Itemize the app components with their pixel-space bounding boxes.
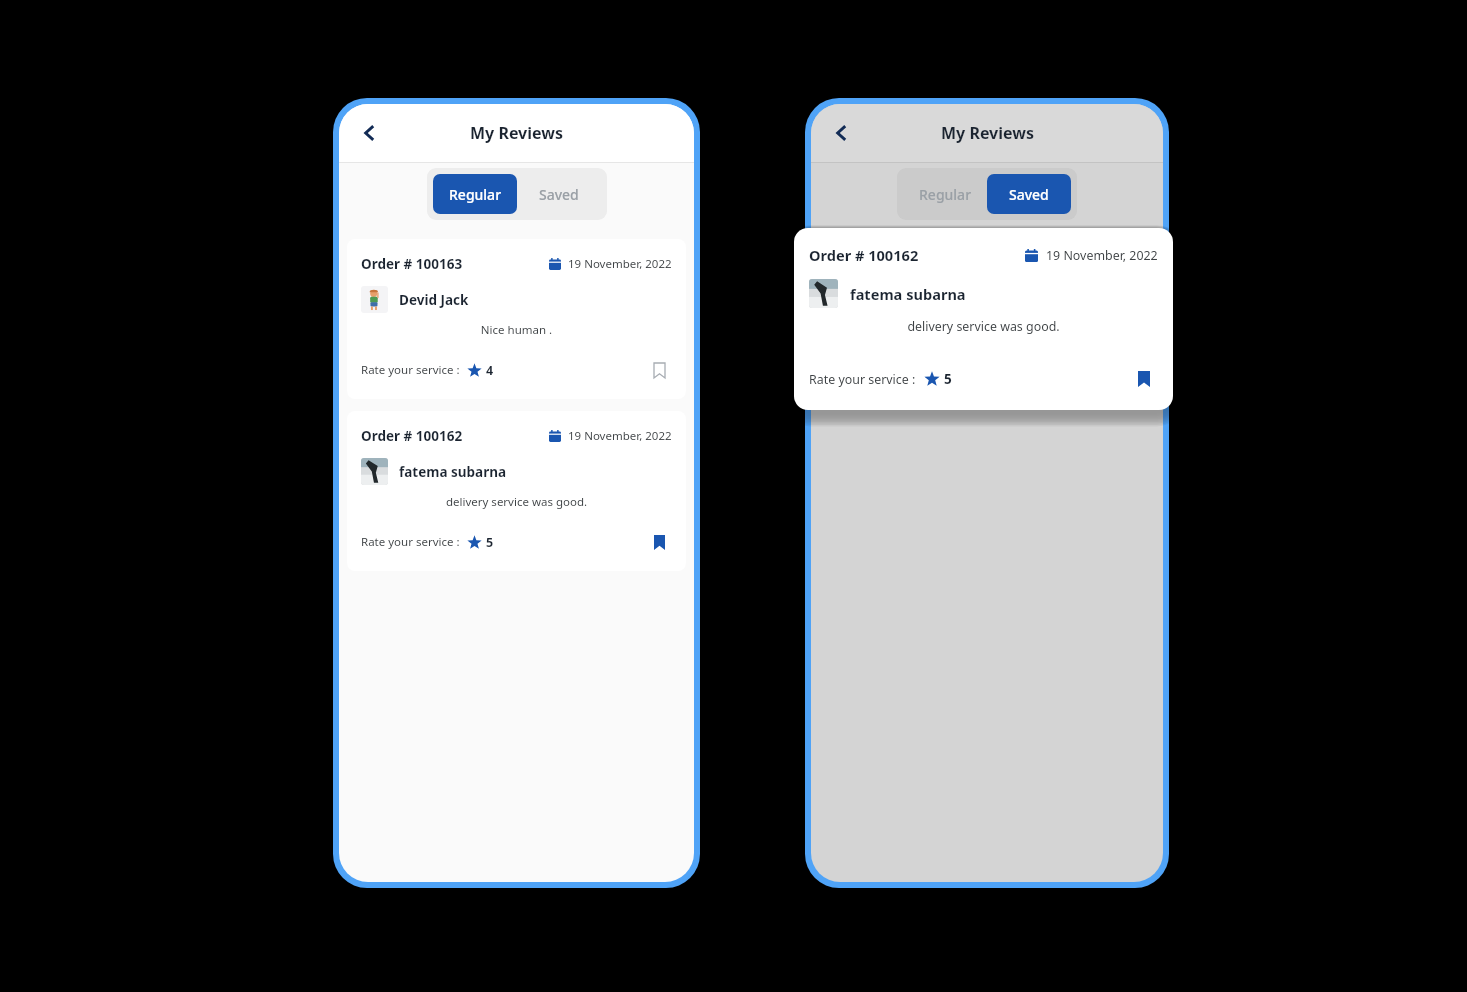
button[interactable]: Save [646,357,672,383]
staticText: 4 [486,362,494,379]
staticText: Nice human . [361,322,672,338]
staticText: Order # 100162 [809,245,919,265]
button[interactable]: Order # 100162 [347,411,686,571]
staticText: 19 November, 2022 [1046,247,1158,264]
staticText: 19 November, 2022 [568,256,672,272]
button[interactable]: Saved [1130,365,1158,393]
staticText: Order # 100163 [361,255,463,273]
staticText: fatema subarna [399,463,507,481]
staticText: Order # 100162 [361,427,463,445]
staticText: delivery service was good. [809,318,1158,335]
button[interactable]: Regular [433,174,517,214]
button[interactable]: Saved [987,174,1071,214]
button[interactable]: Back [353,116,387,150]
staticText: Saved [539,185,579,204]
staticText: 5 [944,370,952,388]
staticText: 5 [486,534,494,551]
staticText: Regular [449,185,502,204]
staticText: Rate your service : [361,362,460,378]
button[interactable]: Saved [646,529,672,555]
staticText: fatema subarna [850,284,966,304]
button[interactable]: Order # 100163 [347,239,686,399]
staticText: My Reviews [941,122,1034,144]
staticText: Regular [919,185,972,204]
staticText: Devid Jack [399,291,469,309]
button[interactable]: Saved [517,174,601,214]
button[interactable]: Regular [903,174,987,214]
staticText: delivery service was good. [361,494,672,510]
button[interactable]: Back [825,116,859,150]
staticText: Rate your service : [809,371,916,388]
staticText: 19 November, 2022 [568,428,672,444]
staticText: My Reviews [470,122,563,144]
staticText: Rate your service : [361,534,460,550]
staticText: Saved [1009,185,1049,204]
